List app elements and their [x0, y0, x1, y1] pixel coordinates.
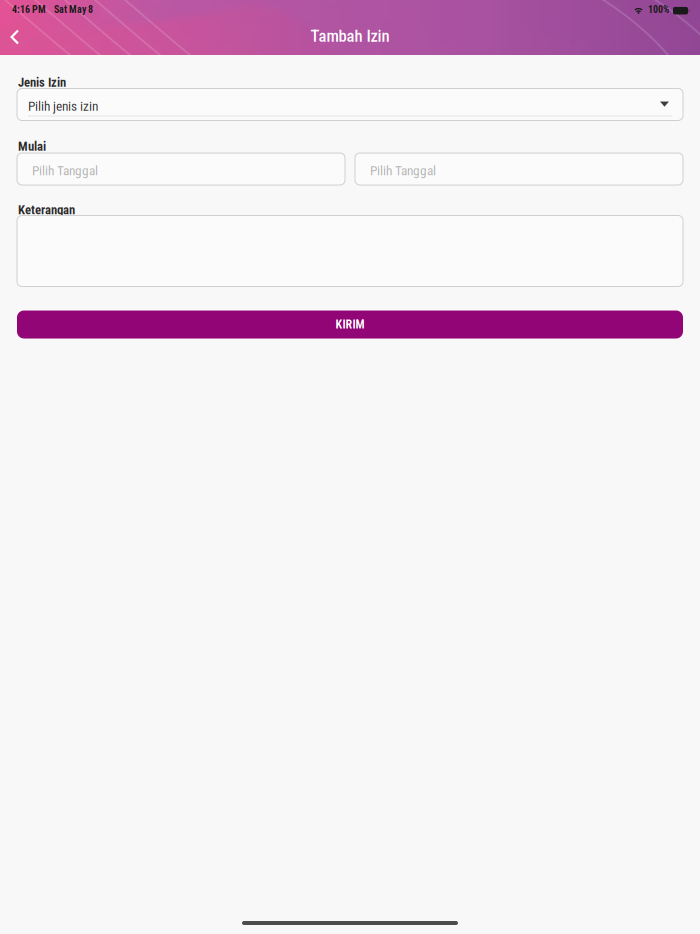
staticText: 100% [648, 4, 669, 15]
button[interactable]: Pilih jenis izin [17, 88, 683, 120]
button[interactable]: Pilih Tanggal [17, 153, 345, 185]
button[interactable]: KIRIM [17, 310, 683, 338]
staticText: Pilih Tanggal [370, 163, 436, 179]
staticText: 4:16 PM [12, 4, 46, 15]
staticText: Jenis Izin [18, 75, 66, 90]
staticText: Tambah Izin [310, 26, 389, 46]
staticText: Sat May 8 [54, 4, 93, 15]
staticText: KIRIM [335, 317, 364, 332]
staticText: Keterangan [18, 202, 75, 217]
staticText: Mulai [18, 139, 46, 154]
staticText: Pilih Tanggal [32, 163, 98, 179]
staticText: Pilih jenis izin [28, 98, 98, 114]
button[interactable]: Back [0, 19, 42, 55]
button[interactable]: Pilih Tanggal [355, 153, 683, 185]
